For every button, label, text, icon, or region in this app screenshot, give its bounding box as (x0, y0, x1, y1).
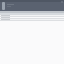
button[interactable] (0, 17, 64, 19)
button[interactable] (0, 19, 64, 21)
button[interactable]: Featured panel (2, 2, 5, 10)
button[interactable] (0, 15, 64, 17)
